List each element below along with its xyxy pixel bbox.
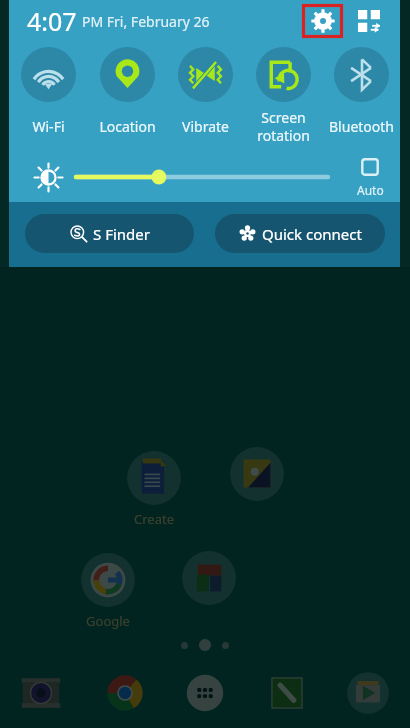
button[interactable]: S Finder xyxy=(25,214,194,253)
button[interactable]: App xyxy=(229,446,285,502)
staticText: Wi-Fi xyxy=(32,117,65,136)
button[interactable]: Vibrate xyxy=(166,42,244,145)
staticText: Quick connect xyxy=(262,224,362,244)
button[interactable]: Camera xyxy=(12,664,70,722)
button[interactable]: Location xyxy=(88,42,166,145)
button[interactable]: Apps xyxy=(176,664,234,722)
staticText: Google xyxy=(86,612,130,630)
staticText: Create xyxy=(134,510,174,528)
button[interactable]: Google xyxy=(80,552,136,630)
button[interactable]: Phone xyxy=(258,664,316,722)
staticText: S Finder xyxy=(93,224,150,244)
staticText: Vibrate xyxy=(182,117,229,136)
button[interactable]: Settings xyxy=(302,4,343,38)
button[interactable]: Play Store xyxy=(339,664,397,722)
button[interactable]: App xyxy=(181,550,237,606)
staticText: Screen rotation xyxy=(257,108,310,145)
staticText: PM Fri, February 26 xyxy=(82,12,210,31)
button[interactable]: Bluetooth xyxy=(322,42,400,145)
button[interactable]: Screen rotation xyxy=(244,42,322,145)
staticText: Bluetooth xyxy=(329,117,394,136)
button[interactable]: Edit quick settings xyxy=(355,7,383,35)
staticText: 4:07 xyxy=(27,4,77,38)
button[interactable]: Chrome xyxy=(96,664,154,722)
button[interactable]: Create xyxy=(126,450,182,528)
button[interactable]: Auto xyxy=(337,158,403,198)
button[interactable]: Quick connect xyxy=(215,214,385,253)
staticText: Auto xyxy=(357,182,384,198)
button[interactable]: Wi-Fi xyxy=(9,42,88,145)
staticText: Location xyxy=(99,117,156,136)
